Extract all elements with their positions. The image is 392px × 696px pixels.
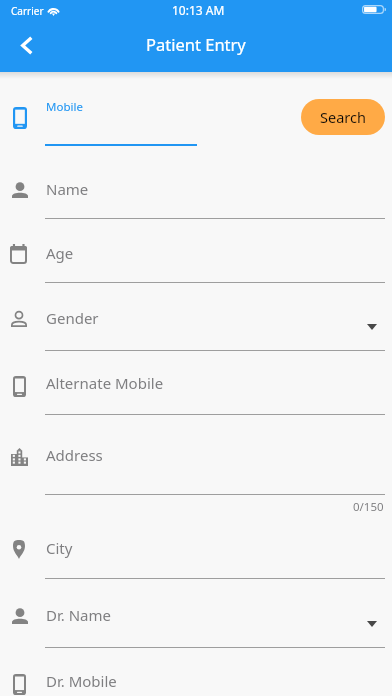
staticText: 0/150 <box>353 499 384 515</box>
staticText: Dr. Mobile <box>46 671 117 691</box>
staticText: Dr. Name <box>46 605 111 625</box>
button[interactable]: City <box>0 526 392 592</box>
button[interactable]: Dr. Name <box>0 593 392 661</box>
button[interactable]: Back <box>2 24 50 72</box>
staticText: 10:13 AM <box>172 2 225 18</box>
staticText: Age <box>46 243 74 263</box>
button[interactable]: Dr. Mobile <box>0 659 392 696</box>
button[interactable]: Search <box>301 99 385 135</box>
staticText: Patient Entry <box>146 33 246 55</box>
staticText: Address <box>46 445 103 465</box>
staticText: Gender <box>46 308 99 328</box>
button[interactable]: Name <box>0 167 392 232</box>
staticText: Name <box>46 179 89 199</box>
button[interactable]: Address <box>0 433 392 508</box>
staticText: Alternate Mobile <box>46 373 164 393</box>
button[interactable]: Age <box>0 231 392 296</box>
button[interactable]: Alternate Mobile <box>0 361 392 428</box>
staticText: Mobile <box>46 99 83 115</box>
staticText: City <box>46 538 73 558</box>
staticText: Search <box>320 107 366 127</box>
button[interactable]: Gender <box>0 296 392 364</box>
staticText: Carrier <box>11 4 44 18</box>
